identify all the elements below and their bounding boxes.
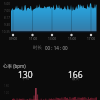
staticText: 166 [68,69,83,81]
staticText: 09:00 [9,37,18,41]
staticText: 最大 [72,77,79,81]
staticText: 平均 [22,77,29,81]
staticText: 11:00 [29,37,38,41]
staticText: 9.30 [4,23,10,27]
staticText: 00 : 14 : 00 [45,45,68,51]
staticText: 15:00 [68,37,77,41]
button[interactable]: 时长 [0,45,100,51]
staticText: 8.17 [4,16,10,20]
staticText: 17:00 [87,37,96,41]
staticText: 10.35 [2,30,10,34]
button[interactable]: 166 [50,69,100,81]
staticText: 130 [18,69,33,81]
button[interactable]: 130 [0,69,50,81]
staticText: 180 [4,84,10,88]
staticText: 120 [4,91,10,95]
staticText: 7.00 [4,9,10,13]
staticText: 心率 (bpm) [3,63,26,69]
staticText: 13:00 [48,37,57,41]
staticText: 5.00 [4,2,10,6]
staticText: 时长 [33,45,42,51]
